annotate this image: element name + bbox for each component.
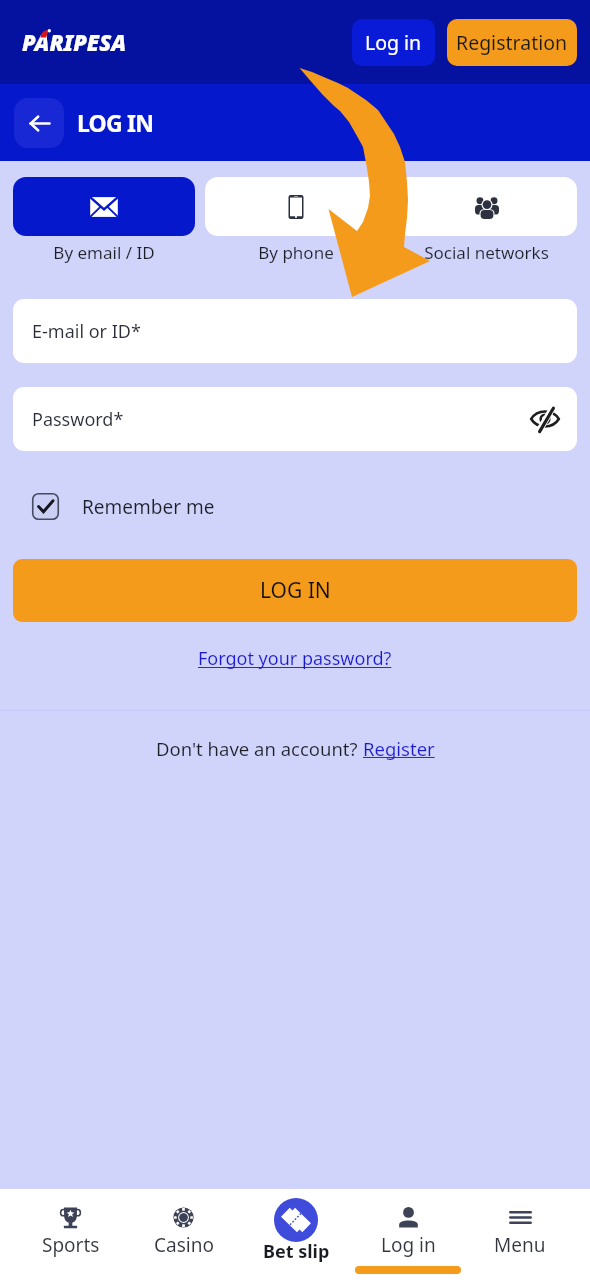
staticText: E-mail or ID* [32,319,141,344]
button[interactable]: Register [363,736,435,761]
button[interactable]: Show password [523,397,567,441]
staticText: Social networks [424,241,549,264]
button[interactable]: By email / ID [13,177,195,264]
staticText: LOG IN [260,576,331,605]
button[interactable]: Casino [127,1189,240,1280]
button[interactable]: Password* [13,387,577,451]
button[interactable]: By phone [205,177,386,264]
button[interactable]: Log in [352,19,435,66]
staticText: Remember me [82,494,215,520]
button[interactable]: Social networks [396,177,577,264]
staticText: Casino [154,1232,214,1258]
staticText: Sports [42,1232,100,1258]
staticText: Menu [494,1232,546,1258]
staticText: By phone [258,241,334,264]
button[interactable]: Log in [352,1189,464,1280]
button[interactable]: Sports [14,1189,127,1280]
button[interactable]: Menu [464,1189,576,1280]
button[interactable]: Forgot your password? [198,646,392,671]
staticText: By email / ID [53,241,155,264]
button[interactable]: PARIPESA [22,27,127,57]
button[interactable]: Bet slip [240,1189,352,1280]
staticText: Don't have an account? [156,736,363,761]
staticText: Registration [456,29,568,56]
staticText: PARIPESA [22,27,127,57]
button[interactable]: LOG IN [13,559,577,622]
button[interactable]: Back [14,98,64,148]
staticText: LOG IN [77,107,154,138]
staticText: Password* [32,407,124,432]
button[interactable]: E-mail or ID* [13,299,577,363]
staticText: Register [363,736,435,761]
staticText: Bet slip [263,1239,330,1264]
button[interactable]: Registration [447,19,577,66]
staticText: Log in [381,1232,436,1258]
staticText: Forgot your password? [198,646,392,671]
staticText: Log in [365,29,422,56]
button[interactable]: Remember me [31,492,215,521]
